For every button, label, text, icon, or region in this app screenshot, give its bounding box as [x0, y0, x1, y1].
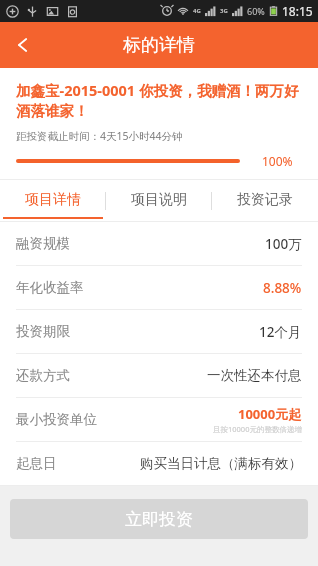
button[interactable]: 立即投资: [10, 499, 308, 539]
staticText: 18:15: [282, 3, 313, 19]
button[interactable]: Back: [0, 22, 46, 68]
staticText: 12个月: [259, 323, 302, 341]
staticText: 标的详情: [123, 34, 195, 57]
button[interactable]: 还款方式: [0, 354, 318, 397]
button[interactable]: 最小投资单位: [0, 398, 318, 441]
staticText: 起息日: [16, 455, 57, 472]
staticText: 10000元起: [238, 405, 302, 423]
staticText: 距投资截止时间：4天15小时44分钟: [16, 129, 183, 143]
staticText: 3G: [220, 7, 228, 15]
button[interactable]: 年化收益率: [0, 266, 318, 309]
staticText: 投资记录: [237, 191, 293, 209]
staticText: 一次性还本付息: [207, 367, 302, 384]
staticText: 年化收益率: [16, 279, 84, 296]
staticText: 投资期限: [16, 323, 70, 340]
button[interactable]: 起息日: [0, 442, 318, 485]
staticText: 60%: [247, 5, 265, 17]
staticText: 100%: [262, 153, 293, 169]
staticText: 项目详情: [25, 191, 81, 209]
button[interactable]: 项目详情: [0, 180, 106, 221]
staticText: 融资规模: [16, 235, 70, 252]
staticText: 4G: [193, 7, 201, 15]
staticText: 立即投资: [125, 509, 193, 530]
staticText: 购买当日计息（满标有效）: [140, 455, 302, 472]
staticText: 最小投资单位: [16, 411, 97, 428]
staticText: 还款方式: [16, 367, 70, 384]
staticText: 加鑫宝-2015-0001 你投资，我赠酒！两万好酒落谁家！: [16, 80, 302, 120]
staticText: 项目说明: [131, 191, 187, 209]
button[interactable]: 投资期限: [0, 310, 318, 353]
staticText: 8.88%: [263, 279, 302, 297]
staticText: 100万: [265, 235, 302, 253]
button[interactable]: 融资规模: [0, 222, 318, 265]
button[interactable]: 项目说明: [106, 180, 212, 221]
staticText: 且按10000元的整数倍递增: [213, 424, 302, 434]
button[interactable]: 投资记录: [212, 180, 318, 221]
